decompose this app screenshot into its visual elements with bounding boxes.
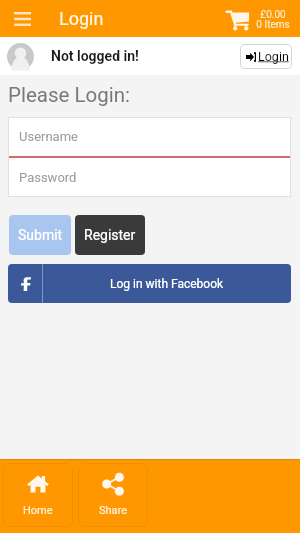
staticText: Share [99, 504, 128, 517]
staticText: Login [59, 8, 104, 29]
staticText: Username [19, 129, 78, 144]
staticText: Submit [18, 227, 63, 243]
button[interactable]: Share [78, 463, 148, 527]
button[interactable]: Password [8, 158, 291, 197]
button[interactable]: Login [240, 44, 292, 69]
button[interactable]: £0.00 0 Items [226, 9, 290, 30]
staticText: Password [19, 170, 77, 185]
staticText: Log in with Facebook [110, 277, 224, 291]
button[interactable]: Home [3, 463, 73, 527]
button[interactable]: Menu [6, 3, 38, 35]
staticText: Login [258, 49, 289, 64]
staticText: Home [23, 504, 53, 517]
staticText: Not logged in! [51, 48, 139, 64]
button[interactable]: Register [75, 215, 145, 255]
staticText: Please Login: [8, 83, 130, 107]
button[interactable]: Log in with Facebook [8, 264, 291, 303]
button[interactable]: Submit [9, 215, 71, 255]
staticText: Register [84, 227, 136, 243]
staticText: £0.00 0 Items [256, 9, 290, 30]
button[interactable]: Username [8, 117, 291, 156]
